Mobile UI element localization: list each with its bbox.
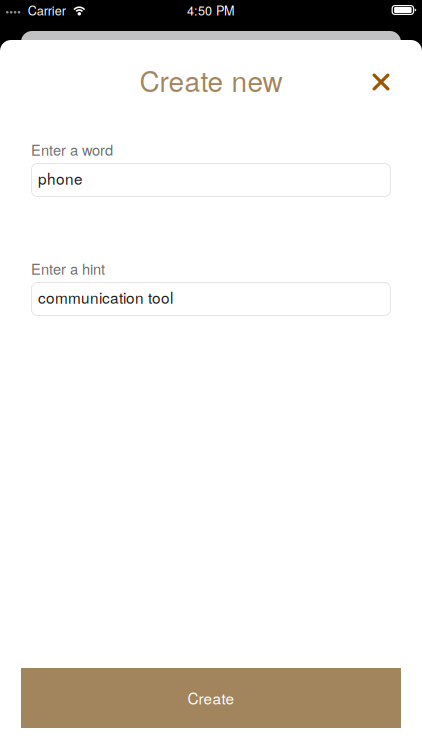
staticText: Carrier bbox=[28, 1, 66, 19]
staticText: phone bbox=[38, 167, 83, 189]
staticText: Create bbox=[187, 687, 234, 709]
staticText: 4:50 PM bbox=[187, 1, 235, 19]
staticText: Create new bbox=[139, 60, 282, 100]
staticText: communication tool bbox=[38, 286, 173, 308]
staticText: Enter a word bbox=[31, 139, 113, 160]
staticText: Enter a hint bbox=[31, 258, 105, 279]
button[interactable]: Close bbox=[358, 57, 404, 103]
button[interactable]: Create bbox=[21, 668, 401, 728]
